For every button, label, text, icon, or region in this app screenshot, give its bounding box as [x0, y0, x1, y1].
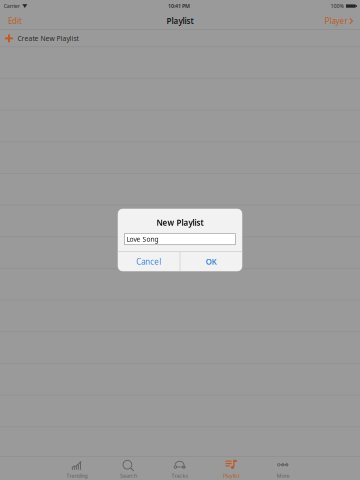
button[interactable]: Edit [0, 12, 30, 30]
button[interactable]: Cancel [118, 252, 180, 271]
button[interactable]: Search [103, 456, 154, 480]
button[interactable]: Playlist [206, 456, 257, 480]
staticText: Love Song [126, 235, 158, 244]
staticText: Cancel [136, 256, 161, 267]
button[interactable]: Trending [51, 456, 103, 480]
staticText: Player [324, 16, 347, 26]
staticText: Playlist [223, 472, 240, 479]
staticText: 10:41 PM [168, 2, 190, 10]
button[interactable]: Create New Playlist [0, 30, 360, 47]
staticText: Trending [66, 472, 87, 479]
button[interactable]: Tracks [154, 456, 206, 480]
staticText: Create New Playlist [17, 34, 78, 43]
staticText: OK [206, 256, 217, 267]
staticText: Tracks [171, 472, 188, 479]
staticText: New Playlist [156, 217, 203, 228]
staticText: Playlist [166, 16, 193, 26]
button[interactable]: OK [180, 252, 242, 271]
staticText: Carrier [4, 2, 20, 10]
button[interactable]: More [257, 456, 309, 480]
button[interactable]: Player [317, 12, 360, 30]
staticText: 100% [330, 2, 343, 10]
staticText: More [276, 472, 289, 479]
staticText: Edit [8, 16, 22, 26]
staticText: Search [120, 472, 137, 479]
